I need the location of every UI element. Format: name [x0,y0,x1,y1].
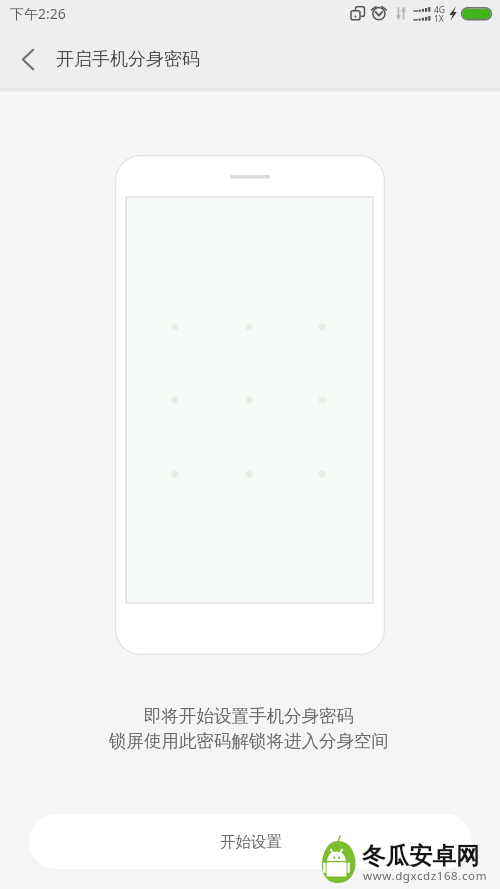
staticText: 1X [434,13,444,25]
staticText: 4G [434,4,446,16]
button[interactable]: 开始设置 [29,814,472,869]
button[interactable]: Back [0,31,56,87]
staticText: 开始设置 [220,832,282,852]
staticText: 开启手机分身密码 [56,48,200,71]
staticText: 下午2:26 [10,4,66,23]
staticText: 锁屏使用此密码解锁将进入分身空间 [109,730,389,752]
staticText: 即将开始设置手机分身密码 [144,705,354,727]
staticText: www.dgxcdz168.com [363,868,487,884]
staticText: 冬瓜安卓网 [362,841,480,871]
